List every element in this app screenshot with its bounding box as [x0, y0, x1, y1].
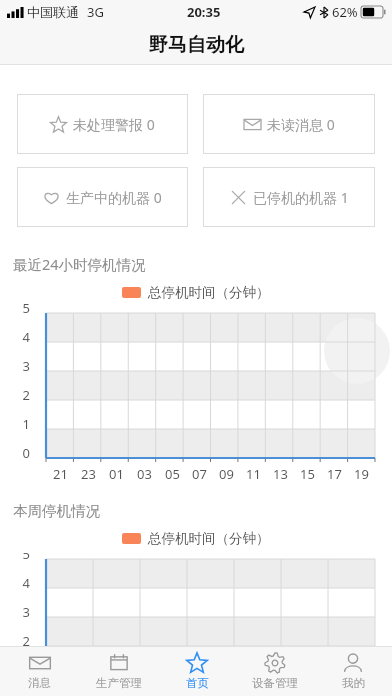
staticText: 62% [332, 3, 358, 21]
staticText: 我的 [342, 676, 365, 690]
button[interactable]: 已停机的机器 [203, 167, 375, 227]
staticText: 消息 [28, 676, 51, 690]
staticText: 09 [219, 465, 234, 483]
staticText: 05 [165, 465, 180, 483]
button[interactable]: 首页 [158, 647, 236, 696]
staticText: 3 [22, 603, 30, 621]
staticText: 2 [22, 632, 30, 650]
staticText: 1 [22, 661, 30, 663]
staticText: 01 [109, 465, 124, 483]
staticText: 07 [192, 465, 207, 483]
staticText: 11 [246, 465, 261, 483]
staticText: 3 [22, 357, 30, 375]
button[interactable]: 消息 [0, 647, 79, 696]
staticText: 首页 [186, 676, 209, 690]
staticText: 1 [22, 415, 30, 433]
button[interactable]: 未处理警报 [17, 94, 188, 154]
staticText: 生产管理 [96, 676, 142, 690]
staticText: 23 [81, 465, 96, 483]
staticText: 生产中的机器 0 [66, 188, 162, 207]
staticText: 已停机的机器 1 [253, 188, 349, 207]
staticText: 20:35 [187, 3, 221, 21]
staticText: 13 [273, 465, 288, 483]
staticText: 19 [354, 465, 369, 483]
staticText: 本周停机情况 [13, 502, 100, 520]
staticText: 5 [22, 553, 30, 563]
staticText: 设备管理 [252, 676, 298, 690]
staticText: 15 [300, 465, 315, 483]
staticText: 0 [22, 444, 30, 462]
button[interactable]: 设备管理 [236, 647, 314, 696]
staticText: 03 [137, 465, 152, 483]
button[interactable]: 生产中的机器 [17, 167, 188, 227]
staticText: 未处理警报 0 [73, 115, 155, 134]
staticText: 最近24小时停机情况 [13, 254, 146, 274]
staticText: 3G [87, 3, 104, 21]
staticText: 5 [22, 299, 30, 317]
staticText: 野马自动化 [149, 33, 244, 57]
staticText: 总停机时间（分钟） [148, 530, 270, 547]
staticText: 4 [22, 328, 30, 346]
staticText: 4 [22, 574, 30, 592]
staticText: 2 [22, 386, 30, 404]
staticText: 总停机时间（分钟） [148, 284, 270, 301]
staticText: 中国联通 [27, 4, 79, 20]
staticText: 未读消息 0 [267, 115, 335, 134]
staticText: 21 [53, 465, 68, 483]
staticText: 17 [327, 465, 342, 483]
button[interactable]: 我的 [314, 647, 392, 696]
button[interactable]: 未读消息 [203, 94, 375, 154]
button[interactable]: 生产管理 [79, 647, 158, 696]
